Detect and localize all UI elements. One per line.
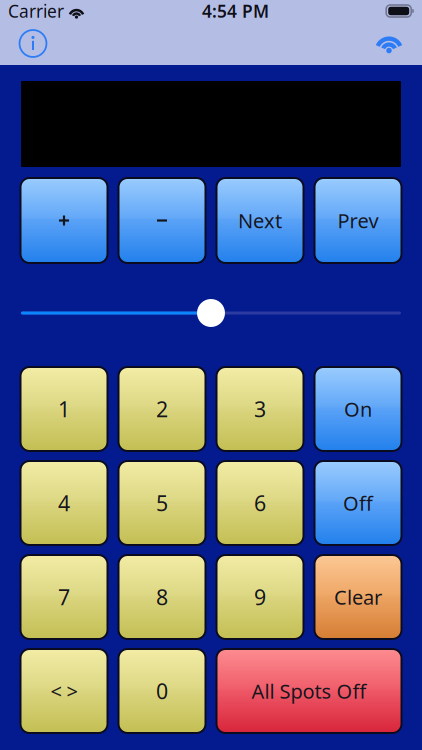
button[interactable]: On xyxy=(314,367,401,451)
staticText: Next xyxy=(238,207,282,234)
button[interactable]: Prev xyxy=(314,178,401,263)
staticText: 2 xyxy=(156,395,168,423)
staticText: On xyxy=(344,396,372,422)
staticText: 6 xyxy=(254,489,266,517)
staticText: 9 xyxy=(254,583,266,611)
staticText: Clear xyxy=(334,584,382,610)
button[interactable]: 5 xyxy=(118,461,205,545)
button[interactable]: 2 xyxy=(118,367,205,451)
button[interactable]: < > xyxy=(20,649,107,733)
button[interactable]: Info xyxy=(0,22,55,65)
button[interactable]: Wi-Fi xyxy=(367,22,422,65)
staticText: 7 xyxy=(58,583,70,611)
staticText: 3 xyxy=(254,395,266,423)
button[interactable]: Decrease xyxy=(118,178,205,263)
button[interactable]: Off xyxy=(314,461,401,545)
staticText: Prev xyxy=(337,207,378,234)
staticText: 8 xyxy=(156,583,168,611)
button[interactable]: 1 xyxy=(20,367,107,451)
staticText: < > xyxy=(50,678,77,704)
button[interactable]: Clear xyxy=(314,555,401,639)
staticText: Carrier xyxy=(8,0,64,22)
button[interactable]: 7 xyxy=(20,555,107,639)
staticText: 0 xyxy=(156,677,168,705)
staticText: 4:54 PM xyxy=(202,0,269,22)
staticText: Off xyxy=(343,490,373,516)
button[interactable]: 8 xyxy=(118,555,205,639)
staticText: 4 xyxy=(58,489,70,517)
button[interactable]: Increase xyxy=(20,178,107,263)
button[interactable]: Next xyxy=(216,178,303,263)
staticText: 5 xyxy=(156,489,168,517)
staticText: 1 xyxy=(58,395,70,423)
button[interactable]: 4 xyxy=(20,461,107,545)
button[interactable]: Brightness xyxy=(21,298,401,328)
button[interactable]: 6 xyxy=(216,461,303,545)
button[interactable]: All Spots Off xyxy=(216,649,401,733)
button[interactable]: 0 xyxy=(118,649,205,733)
button[interactable]: 3 xyxy=(216,367,303,451)
staticText: All Spots Off xyxy=(251,678,366,704)
button[interactable]: 9 xyxy=(216,555,303,639)
